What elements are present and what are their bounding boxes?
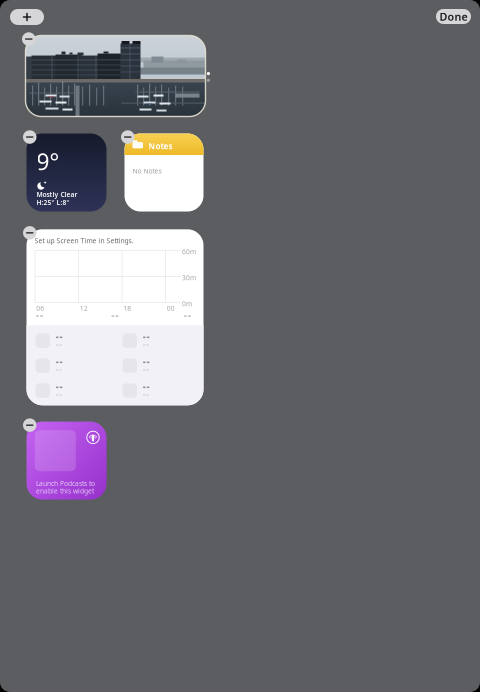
staticText: No Notes [132, 166, 161, 175]
staticText: 30m [182, 273, 196, 282]
staticText: 9° [36, 146, 59, 177]
button[interactable]: Add widget [10, 9, 44, 25]
staticText: 60m [182, 247, 196, 256]
staticText: 12 [80, 304, 88, 313]
staticText: Notes [148, 141, 172, 151]
staticText: Done [439, 9, 467, 24]
button[interactable]: Remove widget [121, 130, 134, 144]
staticText: Set up Screen Time in Settings. [34, 236, 133, 245]
staticText: enable this widget [36, 487, 94, 495]
staticText: 18 [123, 304, 131, 313]
staticText: 06 [36, 304, 44, 313]
staticText: Mostly Clear [36, 190, 77, 199]
button[interactable]: Remove widget [22, 32, 35, 46]
staticText: Launch Podcasts to [36, 479, 95, 488]
button[interactable]: Remove widget [23, 130, 36, 144]
button[interactable]: Remove widget [23, 418, 36, 432]
staticText: 0m [182, 299, 192, 308]
button[interactable]: Done [436, 9, 471, 24]
button[interactable]: Remove widget [23, 226, 36, 240]
staticText: 00 [167, 304, 175, 313]
staticText: H:25° L:8° [36, 198, 69, 207]
